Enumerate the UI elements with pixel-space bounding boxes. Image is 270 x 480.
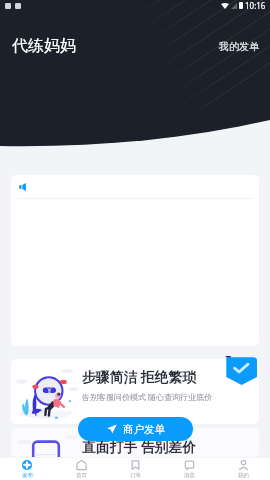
staticText: 代练妈妈	[12, 36, 76, 56]
button[interactable]: 发布	[0, 458, 54, 480]
button[interactable]: 直面打手 告别差价	[11, 428, 259, 457]
button[interactable]: 订单	[108, 458, 162, 480]
button[interactable]: 步骤简洁 拒绝繁琐	[11, 359, 259, 424]
staticText: 我的	[238, 472, 249, 479]
button[interactable]: Announcement	[18, 181, 30, 193]
button[interactable]: 我的	[216, 458, 270, 480]
button[interactable]: 我的发单	[219, 35, 259, 58]
staticText: 我的发单	[219, 40, 259, 53]
staticText: 10:16	[245, 0, 266, 11]
staticText: 发布	[22, 472, 33, 479]
button[interactable]: 首页	[54, 458, 108, 480]
button[interactable]: Announcement	[11, 175, 259, 346]
staticText: 步骤简洁 拒绝繁琐	[82, 367, 196, 386]
other: Verified merchant	[225, 356, 257, 385]
staticText: 首页	[76, 472, 87, 479]
staticText: 商户发单	[123, 423, 165, 436]
staticText: 消息	[184, 472, 195, 479]
staticText: 直面打手 告别差价	[82, 437, 196, 456]
button[interactable]: 消息	[162, 458, 216, 480]
staticText: 告别客服问价模式 随心查询行业底价	[82, 391, 213, 402]
staticText: 订单	[130, 472, 141, 479]
button[interactable]: 商户发单	[78, 417, 193, 441]
